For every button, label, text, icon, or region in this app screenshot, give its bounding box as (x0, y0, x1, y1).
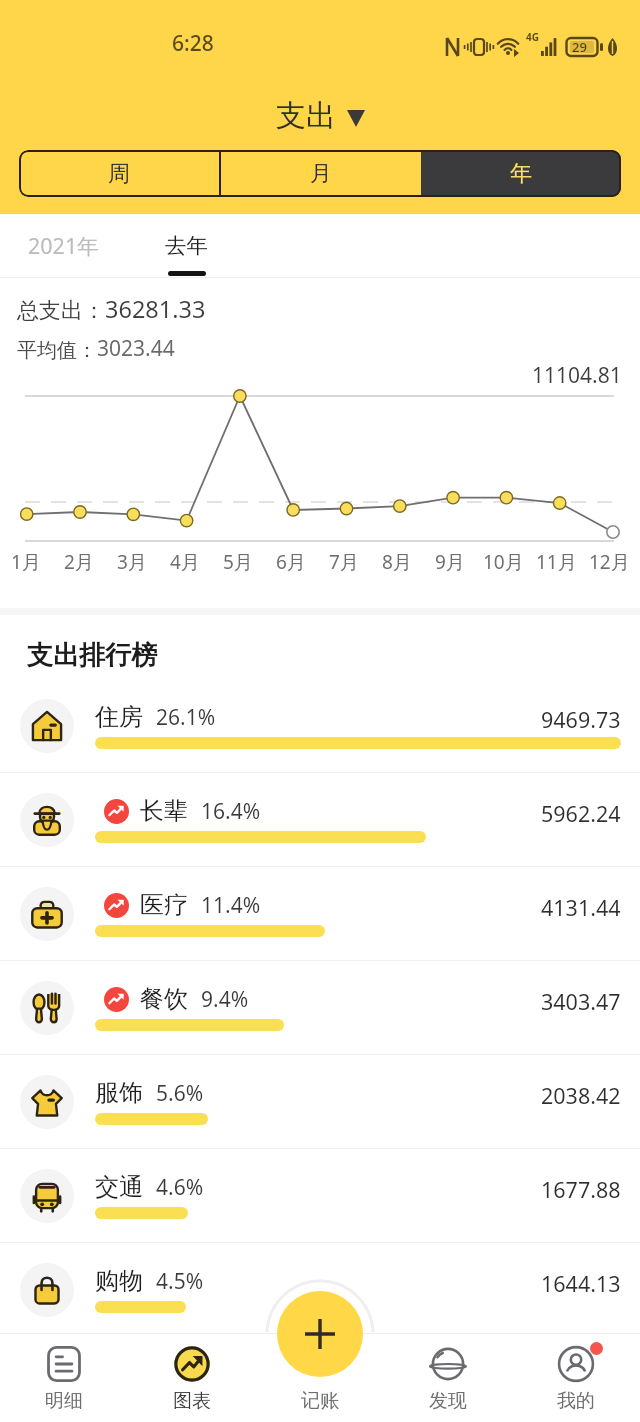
staticText: 6:28 (172, 29, 214, 58)
staticText: 16.4% (201, 797, 261, 826)
staticText: 月 (310, 160, 332, 188)
staticText: 10月 (483, 549, 524, 575)
staticText: 支出排行榜 (27, 639, 157, 672)
button[interactable]: 发现 (384, 1333, 512, 1422)
staticText: 12月 (589, 549, 630, 575)
staticText: 11104.81 (532, 361, 622, 390)
staticText: 7月 (329, 549, 359, 575)
staticText: 总支出： (17, 297, 105, 325)
staticText: 36281.33 (105, 293, 206, 325)
staticText: 6月 (276, 549, 306, 575)
staticText: 26.1% (156, 703, 216, 732)
staticText: 1677.88 (541, 1175, 621, 1204)
staticText: 平均值： (17, 338, 97, 363)
staticText: 支出 (276, 97, 336, 135)
staticText: 9月 (435, 549, 465, 575)
button[interactable]: 周 (19, 150, 219, 197)
staticText: 周 (108, 160, 130, 188)
button[interactable]: 我的 (512, 1333, 640, 1422)
button[interactable]: 2021年 (18, 214, 109, 277)
button[interactable]: 医疗 (0, 867, 640, 961)
staticText: 2月 (64, 549, 94, 575)
staticText: 5月 (223, 549, 253, 575)
staticText: 4G (526, 30, 539, 44)
button[interactable]: 图表 (128, 1333, 256, 1422)
button[interactable]: 月 (221, 150, 421, 197)
button[interactable]: 年 (421, 150, 621, 197)
staticText: 住房 (95, 702, 143, 732)
button[interactable]: 去年 (155, 214, 218, 277)
button[interactable]: 服饰 (0, 1055, 640, 1149)
staticText: 记账 (301, 1389, 339, 1413)
staticText: 服饰 (95, 1078, 143, 1108)
button[interactable]: 餐饮 (0, 961, 640, 1055)
staticText: 3403.47 (541, 987, 621, 1016)
button[interactable]: 住房 (0, 679, 640, 773)
staticText: 明细 (45, 1389, 83, 1413)
staticText: 发现 (429, 1389, 467, 1413)
button[interactable]: 长辈 (0, 773, 640, 867)
button[interactable]: 明细 (0, 1333, 128, 1422)
staticText: 4.5% (156, 1267, 204, 1296)
staticText: 2038.42 (541, 1081, 621, 1110)
button[interactable]: 交通 (0, 1149, 640, 1243)
staticText: 11月 (536, 549, 577, 575)
button[interactable]: 购物 (0, 1243, 640, 1337)
staticText: 年 (510, 160, 532, 188)
staticText: 29 (572, 38, 587, 56)
staticText: 4131.44 (541, 893, 621, 922)
staticText: 4.6% (156, 1173, 204, 1202)
staticText: 医疗 (140, 890, 188, 920)
staticText: 购物 (95, 1266, 143, 1296)
staticText: 我的 (557, 1389, 595, 1413)
button[interactable]: 记账 (256, 1333, 384, 1422)
staticText: 2021年 (28, 231, 99, 260)
staticText: 11.4% (201, 891, 261, 920)
staticText: 图表 (173, 1389, 211, 1413)
staticText: 1月 (11, 549, 41, 575)
button[interactable]: 支出 (268, 93, 373, 139)
staticText: 8月 (382, 549, 412, 575)
staticText: 5.6% (156, 1079, 204, 1108)
button[interactable]: 记账 添加记录 (277, 1291, 363, 1377)
staticText: 1644.13 (541, 1269, 621, 1298)
staticText: 3023.44 (97, 334, 175, 363)
staticText: 3月 (117, 549, 147, 575)
staticText: 9.4% (201, 985, 249, 1014)
staticText: 9469.73 (541, 705, 621, 734)
staticText: 餐饮 (140, 984, 188, 1014)
staticText: 去年 (165, 232, 208, 259)
staticText: 4月 (170, 549, 200, 575)
staticText: 5962.24 (541, 799, 621, 828)
staticText: 长辈 (140, 796, 188, 826)
staticText: 交通 (95, 1172, 143, 1202)
